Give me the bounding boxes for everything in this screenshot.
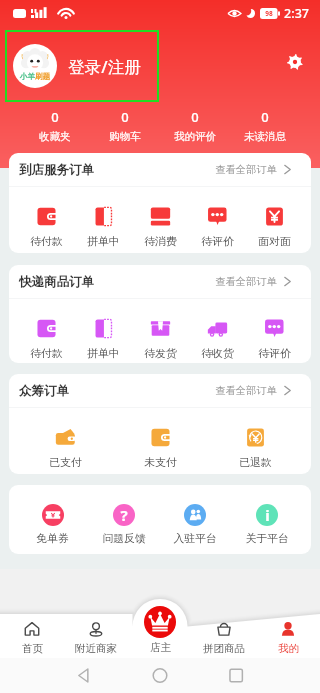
staticText: 待发货 <box>144 347 177 361</box>
button[interactable]: 拼单中 <box>75 299 132 363</box>
button[interactable]: 小羊 <box>6 31 158 101</box>
staticText: 未支付 <box>144 456 177 470</box>
staticText: 关于平台 <box>245 532 289 546</box>
button[interactable]: 待评价 <box>189 187 246 253</box>
staticText: 附近商家 <box>75 642 117 655</box>
button[interactable]: 未支付 <box>113 408 208 474</box>
button[interactable]: 待发货 <box>132 299 189 363</box>
staticText: 已支付 <box>49 456 82 470</box>
staticText: 众筹订单 <box>19 383 69 399</box>
button[interactable]: 0 <box>230 108 300 143</box>
button[interactable]: 拼单中 <box>75 187 132 253</box>
button[interactable]: 待付款 <box>17 187 75 253</box>
staticText: 2:37 <box>284 5 309 22</box>
staticText: ? <box>120 505 128 525</box>
button[interactable]: 0 <box>20 108 90 143</box>
button[interactable]: 快递商品订单 <box>9 265 311 298</box>
button[interactable]: 店主 <box>144 606 176 638</box>
button[interactable]: 入驻平台 <box>159 485 231 554</box>
button[interactable]: 待付款 <box>17 299 75 363</box>
staticText: 快递商品订单 <box>19 274 94 290</box>
button[interactable]: 0 <box>90 108 160 143</box>
staticText: 查看全部订单 <box>215 163 277 176</box>
staticText: 拼团商品 <box>203 642 245 655</box>
button[interactable]: 众筹订单 <box>9 374 311 407</box>
staticText: 待评价 <box>258 347 291 361</box>
button[interactable]: 面对面 <box>246 187 303 253</box>
staticText: 问题反馈 <box>102 532 146 546</box>
staticText: 购物车 <box>109 130 141 143</box>
button[interactable]: 已支付 <box>17 408 113 474</box>
button[interactable]: 拼团商品 <box>192 614 256 658</box>
button[interactable]: 附近商家 <box>64 614 128 658</box>
staticText: 98 <box>265 9 273 18</box>
staticText: 0 <box>191 108 199 126</box>
staticText: 0 <box>121 108 129 126</box>
button[interactable]: 待收货 <box>189 299 246 363</box>
staticText: 小羊 <box>20 72 35 81</box>
button[interactable]: ? <box>88 485 159 554</box>
staticText: 店主 <box>150 641 171 654</box>
staticText: 已退款 <box>239 456 272 470</box>
button[interactable]: 店主 <box>128 614 192 658</box>
staticText: 我的评价 <box>174 130 216 143</box>
button[interactable]: 首页 <box>0 614 64 658</box>
staticText: 0 <box>261 108 269 126</box>
staticText: 待消费 <box>144 235 177 249</box>
staticText: 待付款 <box>30 235 63 249</box>
staticText: 拼单中 <box>87 347 120 361</box>
staticText: 到店服务订单 <box>19 162 94 178</box>
staticText: i <box>265 505 270 525</box>
button[interactable]: Settings <box>280 47 310 77</box>
button[interactable]: 到店服务订单 <box>9 153 311 186</box>
button[interactable]: i <box>231 485 303 554</box>
button[interactable]: 待评价 <box>246 299 303 363</box>
staticText: 查看全部订单 <box>215 384 277 397</box>
staticText: 查看全部订单 <box>215 275 277 288</box>
staticText: 首页 <box>22 642 43 655</box>
staticText: 面对面 <box>258 235 291 249</box>
staticText: 待付款 <box>30 347 63 361</box>
staticText: 登录/注册 <box>68 55 141 78</box>
button[interactable]: 0 <box>160 108 230 143</box>
staticText: 未读消息 <box>244 130 286 143</box>
button[interactable]: 已退款 <box>208 408 303 474</box>
button[interactable]: 待消费 <box>132 187 189 253</box>
staticText: 收藏夹 <box>39 130 71 143</box>
staticText: 入驻平台 <box>173 532 217 546</box>
staticText: 0 <box>51 108 59 126</box>
staticText: 刷题 <box>35 72 50 81</box>
staticText: 拼单中 <box>87 235 120 249</box>
button[interactable]: 我的 <box>256 614 320 658</box>
staticText: 我的 <box>278 642 299 655</box>
staticText: 免单券 <box>36 532 69 546</box>
staticText: 待评价 <box>201 235 234 249</box>
button[interactable]: 免单券 <box>17 485 88 554</box>
staticText: 待收货 <box>201 347 234 361</box>
